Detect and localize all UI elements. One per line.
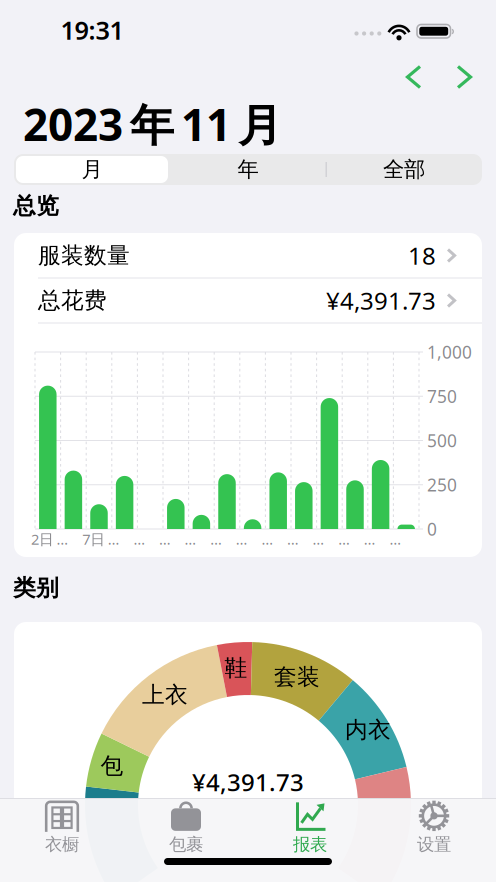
staticText: 总览: [13, 192, 59, 220]
staticText: …: [364, 529, 376, 549]
staticText: 2023 年 11 月: [23, 95, 282, 153]
staticText: 750: [427, 385, 457, 408]
button[interactable]: 总花费: [14, 278, 482, 323]
staticText: …: [313, 529, 325, 549]
staticText: …: [236, 529, 248, 549]
staticText: …: [287, 529, 299, 549]
staticText: ¥4,391.73: [326, 285, 436, 316]
staticText: 250: [427, 473, 457, 496]
staticText: …: [159, 529, 171, 549]
staticText: 1,000: [427, 340, 472, 363]
staticText: ¥4,391.73: [192, 766, 304, 798]
staticText: …: [210, 529, 222, 549]
staticText: 衣橱: [45, 834, 79, 855]
button[interactable]: 设置: [372, 799, 496, 855]
staticText: 报表: [293, 834, 327, 855]
staticText: 包: [100, 752, 123, 780]
staticText: …: [338, 529, 350, 549]
button[interactable]: 包裹: [124, 799, 248, 855]
button[interactable]: 报表: [248, 799, 372, 855]
staticText: 包裹: [169, 834, 203, 855]
staticText: 总花费: [38, 287, 107, 314]
button[interactable]: 全部: [326, 154, 482, 185]
button[interactable]: [452, 64, 476, 90]
staticText: 套装: [274, 663, 320, 691]
staticText: 服装数量: [38, 242, 130, 269]
button[interactable]: 服装数量: [14, 233, 482, 278]
staticText: 500: [427, 429, 457, 452]
button[interactable]: 年: [170, 154, 326, 185]
staticText: 7日: [82, 529, 105, 549]
staticText: 鞋: [224, 654, 247, 682]
staticText: 年: [237, 156, 258, 183]
staticText: …: [133, 529, 145, 549]
staticText: …: [389, 529, 401, 549]
staticText: 月: [81, 156, 102, 183]
staticText: …: [108, 529, 120, 549]
staticText: 内衣: [345, 716, 391, 744]
staticText: …: [185, 529, 197, 549]
staticText: 全部: [383, 156, 425, 183]
button[interactable]: [402, 64, 426, 90]
staticText: …: [261, 529, 273, 549]
staticText: 类别: [13, 574, 59, 602]
staticText: 上衣: [142, 681, 188, 709]
staticText: 0: [427, 517, 437, 540]
staticText: 设置: [417, 834, 451, 855]
button[interactable]: 月: [14, 154, 170, 185]
staticText: 2日: [31, 529, 54, 549]
staticText: 18: [408, 240, 436, 271]
staticText: 19:31: [60, 13, 123, 47]
staticText: …: [57, 529, 69, 549]
button[interactable]: 衣橱: [0, 799, 124, 855]
